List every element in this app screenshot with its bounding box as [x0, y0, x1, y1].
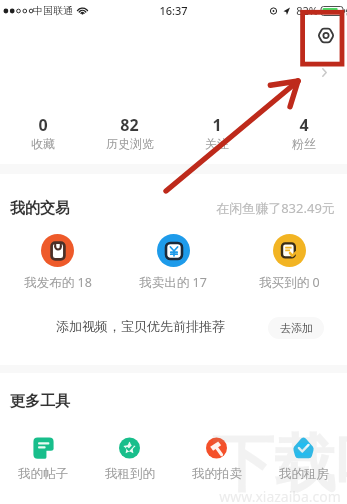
button[interactable]: 82	[86, 114, 173, 151]
staticText: 我租到的	[105, 466, 155, 482]
staticText: 中国联通	[33, 4, 73, 17]
button[interactable]: 我卖出的 17	[115, 234, 231, 291]
staticText: 在闲鱼赚了832.49元	[216, 199, 335, 217]
staticText: 去添加	[280, 321, 313, 335]
button[interactable]: 我租到的	[86, 437, 173, 482]
staticText: 下载吧	[212, 425, 347, 503]
staticText: 收藏	[31, 136, 55, 151]
staticText: 我卖出的 17	[139, 274, 207, 291]
staticText: 添加视频，宝贝优先前排推荐	[56, 318, 225, 334]
button[interactable]: 我的租房	[260, 437, 347, 482]
button[interactable]: More	[316, 64, 332, 80]
staticText: 我的交易	[10, 199, 70, 218]
staticText: 1	[212, 114, 222, 136]
staticText: 我的帖子	[18, 466, 68, 482]
staticText: 我的拍卖	[192, 466, 242, 482]
staticText: 我买到的 0	[259, 274, 320, 291]
staticText: 82%	[296, 3, 318, 18]
button[interactable]: 0	[0, 114, 86, 151]
staticText: 0	[38, 114, 48, 136]
button[interactable]: 我的拍卖	[173, 437, 260, 482]
button[interactable]: 我的帖子	[0, 437, 86, 482]
staticText: 我的租房	[279, 466, 329, 482]
staticText: 关注	[205, 136, 229, 151]
button[interactable]: 我发布的 18	[0, 234, 115, 291]
button[interactable]: 去添加	[268, 317, 324, 339]
staticText: 82	[120, 114, 139, 136]
staticText: 16:37	[159, 3, 188, 18]
staticText: 粉丝	[292, 136, 316, 151]
button[interactable]: 我买到的 0	[231, 234, 347, 291]
staticText: 更多工具	[10, 392, 70, 411]
button[interactable]: 4	[260, 114, 347, 151]
button[interactable]: Settings	[311, 20, 341, 50]
button[interactable]: 1	[173, 114, 260, 151]
staticText: 我发布的 18	[24, 274, 92, 291]
staticText: 4	[299, 114, 309, 136]
staticText: www.xiazaiba.com	[219, 487, 341, 504]
staticText: 历史浏览	[106, 136, 154, 151]
